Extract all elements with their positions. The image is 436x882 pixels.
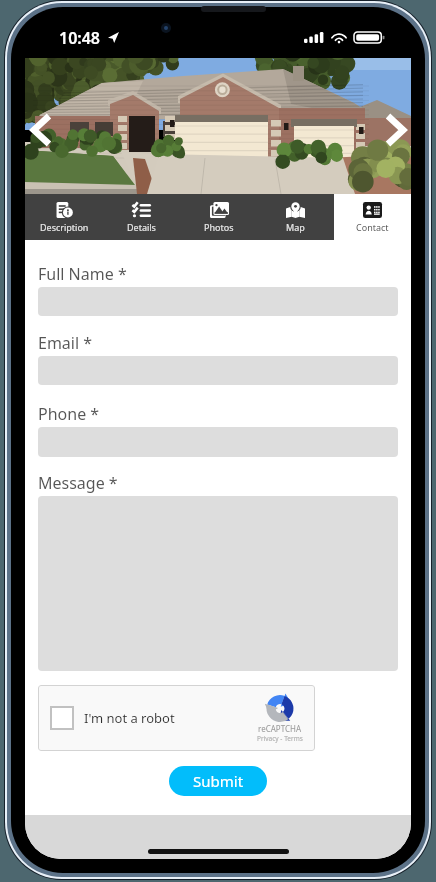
button[interactable]: Photos xyxy=(180,194,257,240)
staticText: I'm not a robot xyxy=(84,709,175,727)
staticText: Email * xyxy=(38,332,93,354)
staticText: reCAPTCHA xyxy=(258,723,302,734)
staticText: Submit xyxy=(193,771,244,791)
button[interactable]: Submit xyxy=(169,766,267,796)
staticText: Phone * xyxy=(38,403,100,425)
staticText: Privacy - Terms xyxy=(257,734,303,743)
staticText: Contact xyxy=(356,221,389,233)
staticText: Message * xyxy=(38,472,118,494)
other: Previous photo xyxy=(33,116,49,144)
button[interactable]: Map xyxy=(257,194,334,240)
button[interactable]: I'm not a robot checkbox xyxy=(50,706,74,730)
button[interactable]: Details xyxy=(103,194,180,240)
button[interactable]: Description xyxy=(25,194,103,240)
staticText: Photos xyxy=(204,221,234,233)
staticText: Details xyxy=(127,221,156,233)
staticText: Full Name * xyxy=(38,263,127,285)
button[interactable]: Contact xyxy=(334,194,411,240)
staticText: 10:48 xyxy=(59,27,101,49)
staticText: Map xyxy=(286,221,305,233)
other: Next photo xyxy=(388,116,404,144)
staticText: Description xyxy=(40,221,89,233)
